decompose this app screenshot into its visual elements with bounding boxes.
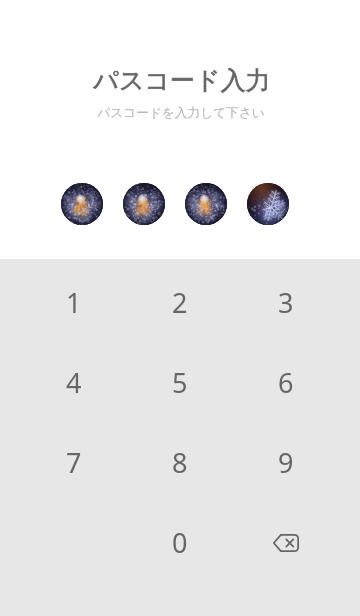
staticText: 9 bbox=[278, 444, 294, 481]
other: Passcode digit entered bbox=[123, 183, 165, 225]
button[interactable]: 1 bbox=[21, 262, 127, 342]
button[interactable]: 7 bbox=[21, 422, 127, 502]
button[interactable]: 2 bbox=[127, 262, 233, 342]
staticText: 5 bbox=[172, 364, 188, 401]
button[interactable]: 6 bbox=[233, 342, 339, 422]
staticText: 4 bbox=[66, 364, 82, 401]
button[interactable]: Delete bbox=[233, 502, 339, 582]
other: Passcode digit empty bbox=[247, 183, 289, 225]
staticText: 6 bbox=[278, 364, 294, 401]
staticText: 2 bbox=[172, 284, 188, 321]
button[interactable]: 4 bbox=[21, 342, 127, 422]
button[interactable]: 3 bbox=[233, 262, 339, 342]
staticText: 8 bbox=[172, 444, 188, 481]
staticText: 7 bbox=[66, 444, 82, 481]
staticText: パスコード入力 bbox=[2, 65, 360, 96]
button[interactable]: 8 bbox=[127, 422, 233, 502]
staticText: 0 bbox=[172, 524, 188, 561]
staticText: パスコード入力 bbox=[2, 65, 360, 96]
staticText: パスコードを入力して下さい bbox=[1, 105, 360, 121]
staticText: 3 bbox=[278, 284, 294, 321]
button[interactable]: 0 bbox=[127, 502, 233, 582]
other: Passcode digit entered bbox=[185, 183, 227, 225]
button[interactable]: 9 bbox=[233, 422, 339, 502]
other: Passcode digit entered bbox=[61, 183, 103, 225]
staticText: 1 bbox=[66, 284, 82, 321]
button[interactable]: 5 bbox=[127, 342, 233, 422]
